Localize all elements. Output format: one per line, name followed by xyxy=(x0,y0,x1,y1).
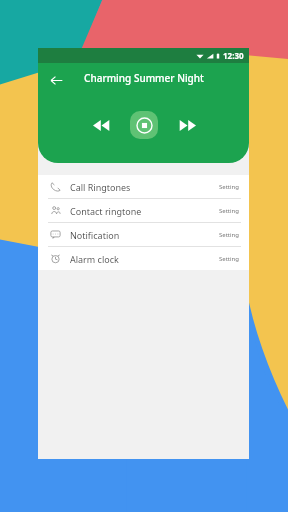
staticText: Setting xyxy=(219,207,239,215)
staticText: Notification xyxy=(70,229,120,241)
button[interactable]: Notification xyxy=(38,223,249,246)
button[interactable]: Back xyxy=(44,68,68,92)
button[interactable]: Previous xyxy=(86,110,116,140)
button[interactable]: Alarm clock xyxy=(38,247,249,270)
button[interactable]: Contact ringtone xyxy=(38,199,249,222)
staticText: Call Ringtones xyxy=(70,181,131,193)
staticText: Contact ringtone xyxy=(70,205,142,217)
staticText: Setting xyxy=(219,255,239,263)
button[interactable]: Next xyxy=(172,110,202,140)
staticText: Setting xyxy=(219,183,239,191)
staticText: Setting xyxy=(219,231,239,239)
staticText: Charming Summer Night xyxy=(84,71,204,85)
staticText: Alarm clock xyxy=(70,253,119,265)
button[interactable]: Call Ringtones xyxy=(38,175,249,198)
button[interactable]: Stop xyxy=(130,111,158,139)
staticText: 12:30 xyxy=(223,50,244,61)
